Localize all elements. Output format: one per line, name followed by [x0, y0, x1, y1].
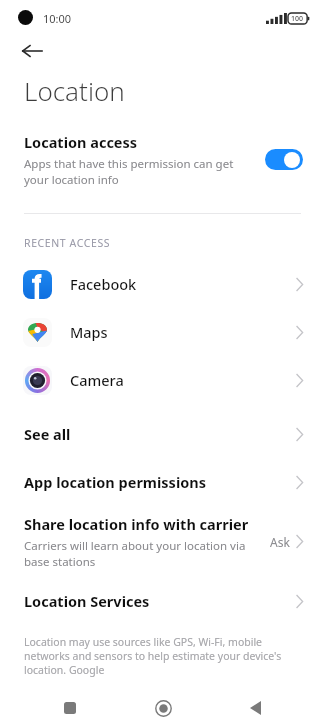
- button[interactable]: Facebook: [0, 260, 325, 308]
- staticText: Location may use sources like GPS, Wi-Fi…: [24, 635, 301, 677]
- button[interactable]: Location Services: [0, 577, 325, 625]
- button[interactable]: Home: [141, 692, 185, 724]
- staticText: Carriers will learn about your location …: [24, 538, 264, 569]
- button[interactable]: Location access: [0, 130, 325, 189]
- staticText: Location access: [24, 132, 138, 152]
- staticText: App location permissions: [24, 472, 296, 492]
- staticText: Location Services: [24, 591, 296, 611]
- staticText: Location: [24, 73, 125, 108]
- staticText: RECENT ACCESS: [24, 236, 111, 250]
- staticText: Share location info with carrier: [24, 514, 249, 534]
- button[interactable]: See all: [0, 410, 325, 458]
- staticText: Apps that have this permission can get y…: [24, 156, 253, 187]
- button[interactable]: Location access toggle: [265, 149, 303, 170]
- button[interactable]: Back: [12, 34, 52, 68]
- staticText: 10:00: [43, 11, 72, 26]
- button[interactable]: Back: [233, 692, 277, 724]
- staticText: 100: [291, 14, 304, 24]
- staticText: See all: [24, 424, 296, 444]
- staticText: Ask: [270, 534, 290, 550]
- staticText: Camera: [70, 370, 296, 390]
- button[interactable]: Share location info with carrier: [0, 506, 325, 577]
- button[interactable]: App location permissions: [0, 458, 325, 506]
- button[interactable]: Recents: [48, 692, 92, 724]
- button[interactable]: Camera: [0, 356, 325, 404]
- staticText: Facebook: [70, 274, 296, 294]
- staticText: Maps: [70, 322, 296, 342]
- button[interactable]: Maps: [0, 308, 325, 356]
